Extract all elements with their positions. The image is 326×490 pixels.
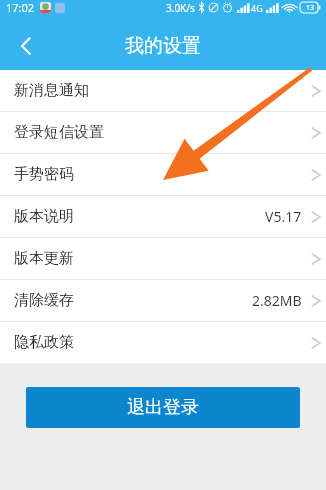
staticText: 新消息通知 [14, 81, 89, 100]
staticText: 版本更新 [14, 249, 74, 268]
button[interactable]: Back [6, 26, 46, 66]
button[interactable]: 版本说明 [0, 196, 326, 237]
staticText: V5.17 [265, 207, 302, 226]
staticText: 我的设置 [125, 34, 201, 58]
staticText: 清除缓存 [14, 291, 74, 310]
staticText: 隐私政策 [14, 333, 74, 352]
button[interactable]: 隐私政策 [0, 322, 326, 363]
button[interactable]: 清除缓存 [0, 280, 326, 321]
staticText: 手势密码 [14, 165, 74, 184]
staticText: 13 [306, 3, 315, 13]
staticText: 退出登录 [127, 396, 199, 419]
staticText: 版本说明 [14, 207, 74, 226]
button[interactable]: 版本更新 [0, 238, 326, 279]
button[interactable]: 退出登录 [26, 387, 300, 428]
button[interactable]: 手势密码 [0, 154, 326, 195]
staticText: 3.0K/s [166, 1, 195, 15]
staticText: 登录短信设置 [14, 123, 104, 142]
staticText: 2.82MB [252, 291, 302, 310]
staticText: 17:02 [6, 0, 35, 15]
button[interactable]: 新消息通知 [0, 70, 326, 111]
button[interactable]: 登录短信设置 [0, 112, 326, 153]
staticText: 4G [251, 2, 263, 14]
